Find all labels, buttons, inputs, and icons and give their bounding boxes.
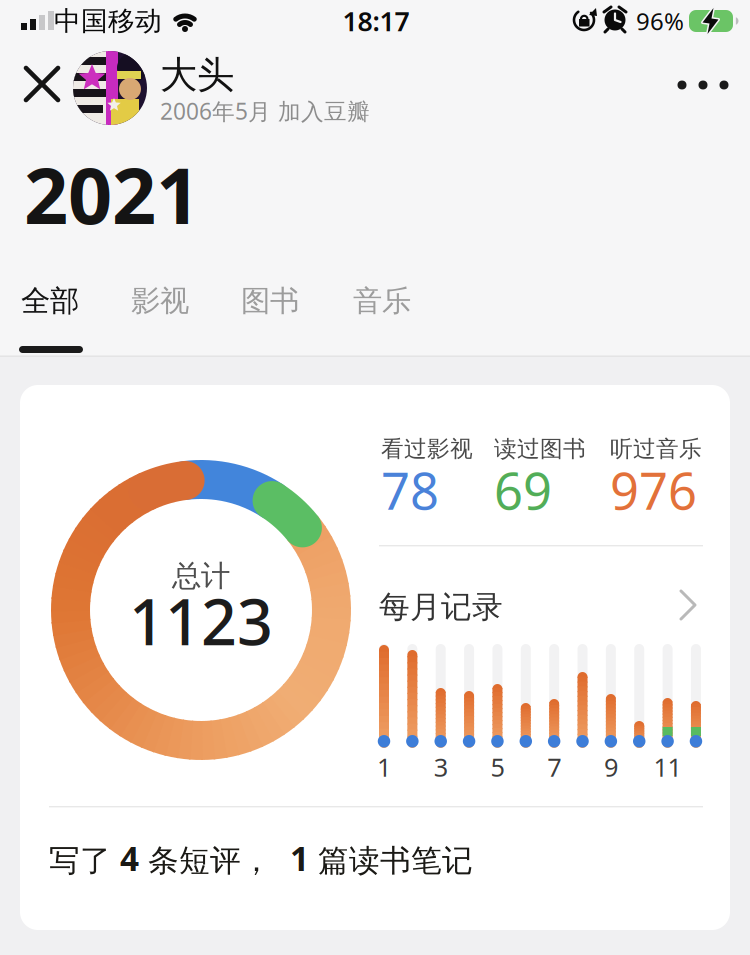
staticText: 9 bbox=[604, 750, 618, 784]
staticText: 每月记录 bbox=[379, 588, 503, 626]
button[interactable]: 音乐 bbox=[330, 275, 434, 327]
staticText: 96% bbox=[636, 5, 684, 37]
button[interactable]: 每月记录 bbox=[378, 578, 704, 634]
staticText: 总计 bbox=[172, 558, 230, 594]
button[interactable]: More bbox=[668, 63, 738, 107]
staticText: 18:17 bbox=[342, 3, 409, 39]
button[interactable]: 全部 bbox=[0, 275, 102, 327]
staticText: 音乐 bbox=[353, 283, 411, 319]
staticText: 5 bbox=[490, 750, 504, 784]
staticText: 全部 bbox=[21, 283, 79, 319]
button[interactable]: 影视 bbox=[108, 275, 212, 327]
staticText: 78 bbox=[381, 456, 439, 524]
staticText: 写了 4 条短评， 1 篇读书笔记 bbox=[49, 836, 473, 880]
staticText: 2021 bbox=[24, 143, 200, 245]
staticText: 2006年5月 加入豆瓣 bbox=[160, 96, 370, 126]
staticText: 影视 bbox=[131, 283, 189, 319]
staticText: 图书 bbox=[241, 283, 299, 319]
staticText: 976 bbox=[610, 456, 697, 524]
staticText: 中国移动 bbox=[54, 5, 162, 37]
staticText: 听过音乐 bbox=[610, 435, 702, 463]
staticText: 7 bbox=[547, 750, 561, 784]
staticText: 1123 bbox=[129, 579, 273, 663]
button[interactable]: 图书 bbox=[218, 275, 322, 327]
staticText: 69 bbox=[494, 456, 552, 524]
staticText: 读过图书 bbox=[494, 435, 586, 463]
staticText: 11 bbox=[654, 750, 682, 784]
staticText: 大头 bbox=[160, 52, 234, 98]
button[interactable]: Close bbox=[13, 55, 71, 113]
staticText: 看过影视 bbox=[381, 435, 473, 463]
staticText: 1 bbox=[377, 750, 391, 784]
staticText: 3 bbox=[434, 750, 448, 784]
